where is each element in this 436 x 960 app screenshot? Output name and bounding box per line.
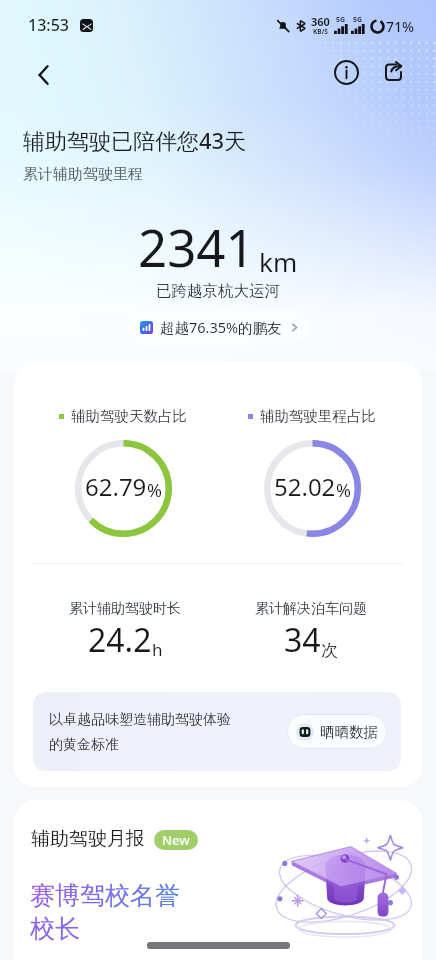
staticText: h xyxy=(152,638,163,661)
staticText: 5G xyxy=(353,15,363,25)
staticText: 5G xyxy=(336,15,346,25)
staticText: 超越76.35%的鹏友 xyxy=(160,317,282,337)
staticText: 辅助驾驶天数占比 xyxy=(71,407,187,425)
staticText: 辅助驾驶里程占比 xyxy=(260,407,376,425)
staticText: 累计辅助驾驶时长 xyxy=(69,600,181,618)
button[interactable]: Back xyxy=(26,57,62,93)
staticText: 累计解决泊车问题 xyxy=(255,600,367,618)
button[interactable]: Share xyxy=(376,54,410,88)
staticText: 360 xyxy=(311,14,330,29)
staticText: % xyxy=(147,478,162,503)
staticText: km xyxy=(259,244,298,279)
staticText: 累计辅助驾驶里程 xyxy=(23,165,143,184)
staticText: 辅助驾驶月报 xyxy=(31,827,145,851)
staticText: KB/S xyxy=(313,27,328,36)
staticText: 辅助驾驶已陪伴您43天 xyxy=(23,125,247,155)
staticText: 71% xyxy=(386,17,414,36)
staticText: 24.2 xyxy=(88,618,152,662)
staticText: 次 xyxy=(321,640,338,661)
button[interactable]: 晒晒数据 xyxy=(287,714,387,749)
button[interactable]: 辅助驾驶月报 xyxy=(14,800,422,960)
staticText: 13:53 xyxy=(28,14,69,36)
staticText: % xyxy=(336,478,351,503)
staticText: 以卓越品味塑造辅助驾驶体验 的黄金标准 xyxy=(49,711,231,753)
button[interactable]: 超越76.35%的鹏友 xyxy=(129,311,308,343)
staticText: New xyxy=(162,831,190,849)
staticText: 已跨越京杭大运河 xyxy=(156,281,280,301)
staticText: 34 xyxy=(284,618,321,662)
staticText: 62.79 xyxy=(85,470,147,503)
staticText: 晒晒数据 xyxy=(320,723,378,741)
staticText: 2341 xyxy=(138,212,255,281)
staticText: 赛博驾校名誉 校长 xyxy=(30,880,180,944)
button[interactable]: Info xyxy=(329,55,363,89)
staticText: 52.02 xyxy=(274,470,336,503)
